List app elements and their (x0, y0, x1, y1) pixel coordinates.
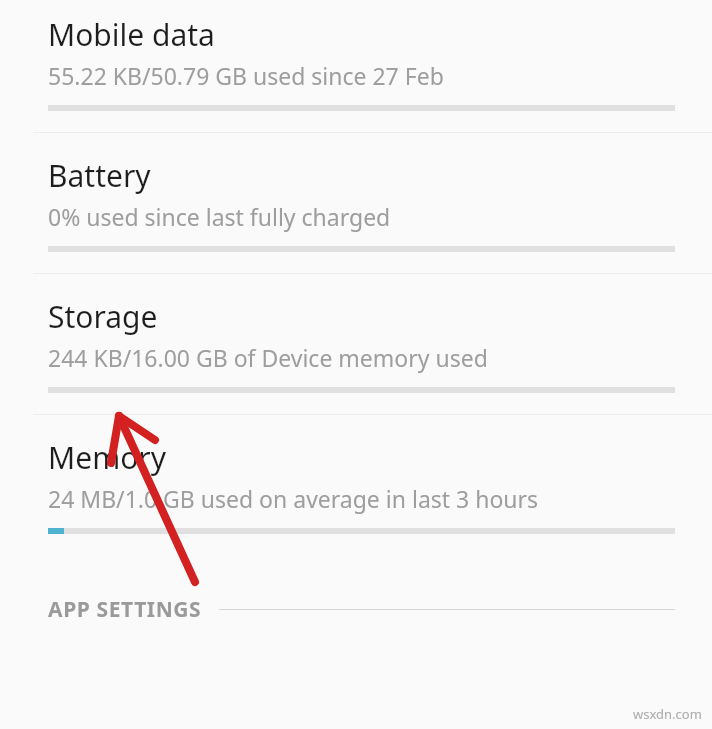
staticText: Storage (48, 296, 158, 337)
staticText: APP SETTINGS (48, 595, 202, 624)
staticText: 55.22 KB/50.79 GB used since 27 Feb (48, 60, 444, 91)
staticText: 0% used since last fully charged (48, 201, 391, 232)
staticText: 24 MB/1.0 GB used on average in last 3 h… (48, 483, 539, 514)
staticText: Memory (48, 437, 167, 478)
button[interactable]: Mobile data (0, 0, 712, 111)
button[interactable]: Storage (0, 274, 712, 393)
button[interactable]: Battery (0, 133, 712, 252)
staticText: Mobile data (48, 14, 215, 55)
other: Annotation arrow (0, 0, 712, 729)
button[interactable]: APP SETTINGS (0, 592, 712, 626)
button[interactable]: Memory (0, 415, 712, 534)
staticText: 244 KB/16.00 GB of Device memory used (48, 342, 488, 373)
staticText: wsxdn.com (633, 705, 702, 723)
staticText: Battery (48, 155, 151, 196)
